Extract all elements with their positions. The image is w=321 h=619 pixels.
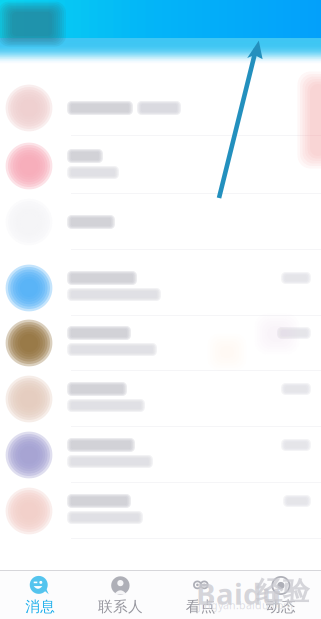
button[interactable]: 看点 (160, 571, 241, 619)
button[interactable] (0, 138, 321, 194)
staticText: jingyan.baidu.com (198, 598, 293, 612)
button[interactable]: 动态 (241, 571, 321, 619)
staticText: 消息 (25, 597, 55, 615)
staticText: Baidu (196, 574, 281, 613)
staticText: 看点 (186, 597, 216, 615)
button[interactable]: 联系人 (80, 571, 160, 619)
button[interactable]: 消息 (0, 571, 80, 619)
button[interactable] (0, 194, 321, 250)
button[interactable] (0, 80, 321, 136)
button[interactable] (0, 260, 321, 316)
staticText: 经验 (256, 575, 310, 608)
button[interactable] (0, 371, 321, 427)
button[interactable] (0, 427, 321, 483)
staticText: 联系人 (98, 597, 143, 615)
staticText: 动态 (266, 597, 296, 615)
button[interactable] (0, 315, 321, 371)
button[interactable] (0, 483, 321, 539)
